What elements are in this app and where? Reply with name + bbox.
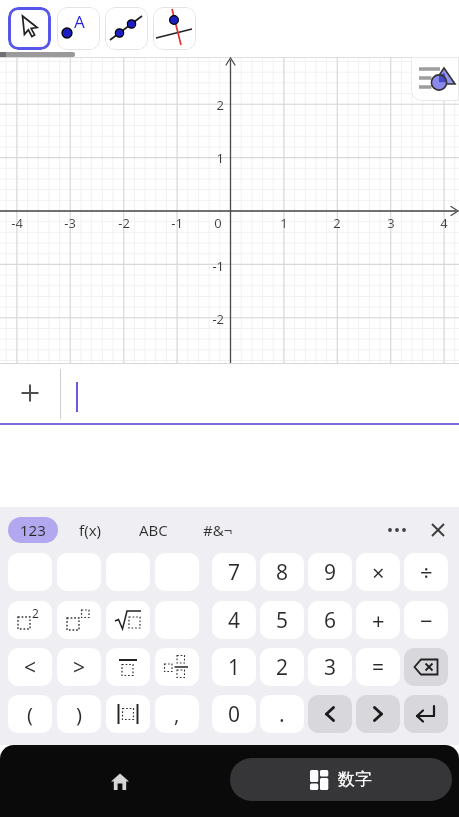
button[interactable]: f(x) bbox=[68, 517, 112, 543]
button[interactable]: 数字 bbox=[230, 758, 452, 801]
button[interactable]: ( bbox=[8, 695, 52, 733]
button[interactable] bbox=[155, 601, 199, 639]
button[interactable]: #&¬ bbox=[194, 517, 242, 543]
button[interactable]: 3 bbox=[308, 648, 352, 686]
staticText: 数字 bbox=[338, 769, 372, 790]
staticText: #&¬ bbox=[203, 520, 233, 540]
button[interactable] bbox=[404, 648, 448, 686]
staticText: 6 bbox=[324, 606, 337, 635]
button[interactable] bbox=[105, 7, 148, 50]
staticText: < bbox=[24, 653, 37, 682]
button[interactable]: 4 bbox=[212, 601, 256, 639]
button[interactable] bbox=[411, 57, 459, 101]
button[interactable] bbox=[155, 648, 199, 686]
staticText: 1 bbox=[280, 214, 288, 232]
staticText: 1 bbox=[228, 653, 241, 682]
staticText: > bbox=[73, 653, 86, 682]
button[interactable] bbox=[356, 695, 400, 733]
button[interactable] bbox=[308, 695, 352, 733]
staticText: 2 bbox=[276, 653, 289, 682]
button[interactable]: ÷ bbox=[404, 553, 448, 591]
button[interactable]: 5 bbox=[260, 601, 304, 639]
staticText: 9 bbox=[324, 558, 337, 587]
button[interactable] bbox=[404, 695, 448, 733]
button[interactable]: 123 bbox=[8, 517, 58, 543]
button[interactable] bbox=[8, 553, 52, 591]
staticText: 7 bbox=[228, 558, 241, 587]
button[interactable]: , bbox=[155, 695, 199, 733]
button[interactable]: 7 bbox=[212, 553, 256, 591]
staticText: -2 bbox=[212, 310, 224, 328]
staticText: -1 bbox=[171, 214, 183, 232]
button[interactable] bbox=[57, 553, 101, 591]
button[interactable] bbox=[98, 759, 142, 803]
staticText: 5 bbox=[276, 606, 289, 635]
staticText: 2 bbox=[32, 605, 39, 621]
button[interactable] bbox=[106, 648, 150, 686]
staticText: 1 bbox=[216, 149, 224, 167]
button[interactable] bbox=[424, 517, 452, 543]
staticText: -1 bbox=[212, 257, 224, 275]
staticText: ) bbox=[76, 701, 82, 728]
button[interactable] bbox=[0, 363, 60, 423]
staticText: 2 bbox=[333, 214, 341, 232]
button[interactable]: = bbox=[356, 648, 400, 686]
staticText: 4 bbox=[228, 606, 241, 635]
button[interactable] bbox=[106, 601, 150, 639]
staticText: ÷ bbox=[420, 557, 433, 587]
button[interactable]: 2 bbox=[260, 648, 304, 686]
staticText: + bbox=[372, 605, 385, 635]
button[interactable]: > bbox=[57, 648, 101, 686]
button[interactable]: A bbox=[57, 7, 100, 50]
button[interactable]: < bbox=[8, 648, 52, 686]
staticText: A bbox=[74, 10, 85, 33]
button[interactable]: . bbox=[260, 695, 304, 733]
button[interactable] bbox=[153, 7, 196, 50]
button[interactable]: 9 bbox=[308, 553, 352, 591]
button[interactable] bbox=[106, 695, 150, 733]
staticText: 3 bbox=[324, 653, 337, 682]
button[interactable]: + bbox=[356, 601, 400, 639]
button[interactable] bbox=[382, 517, 412, 543]
staticText: , bbox=[174, 701, 180, 728]
staticText: 3 bbox=[387, 214, 395, 232]
button[interactable]: 8 bbox=[260, 553, 304, 591]
staticText: 0 bbox=[228, 700, 241, 729]
button[interactable]: ABC bbox=[131, 517, 175, 543]
staticText: -2 bbox=[118, 214, 130, 232]
button[interactable] bbox=[155, 553, 199, 591]
staticText: ABC bbox=[139, 520, 168, 540]
staticText: 8 bbox=[276, 558, 289, 587]
staticText: -3 bbox=[64, 214, 76, 232]
staticText: f(x) bbox=[79, 520, 102, 540]
button[interactable] bbox=[8, 7, 51, 50]
button[interactable]: − bbox=[404, 601, 448, 639]
staticText: 2 bbox=[216, 96, 224, 114]
staticText: = bbox=[372, 653, 385, 682]
staticText: × bbox=[372, 557, 385, 587]
button[interactable] bbox=[57, 601, 101, 639]
button[interactable]: 1 bbox=[212, 648, 256, 686]
staticText: . bbox=[279, 700, 285, 729]
button[interactable]: 6 bbox=[308, 601, 352, 639]
button[interactable]: ) bbox=[57, 695, 101, 733]
button[interactable]: × bbox=[356, 553, 400, 591]
staticText: 123 bbox=[20, 520, 46, 540]
staticText: -4 bbox=[11, 214, 23, 232]
staticText: 4 bbox=[440, 214, 448, 232]
button[interactable] bbox=[61, 363, 459, 423]
staticText: ( bbox=[27, 701, 33, 728]
staticText: − bbox=[420, 605, 433, 635]
button[interactable] bbox=[106, 553, 150, 591]
button[interactable]: 0 bbox=[212, 695, 256, 733]
staticText: 0 bbox=[214, 214, 222, 232]
button[interactable]: 2 bbox=[8, 601, 52, 639]
